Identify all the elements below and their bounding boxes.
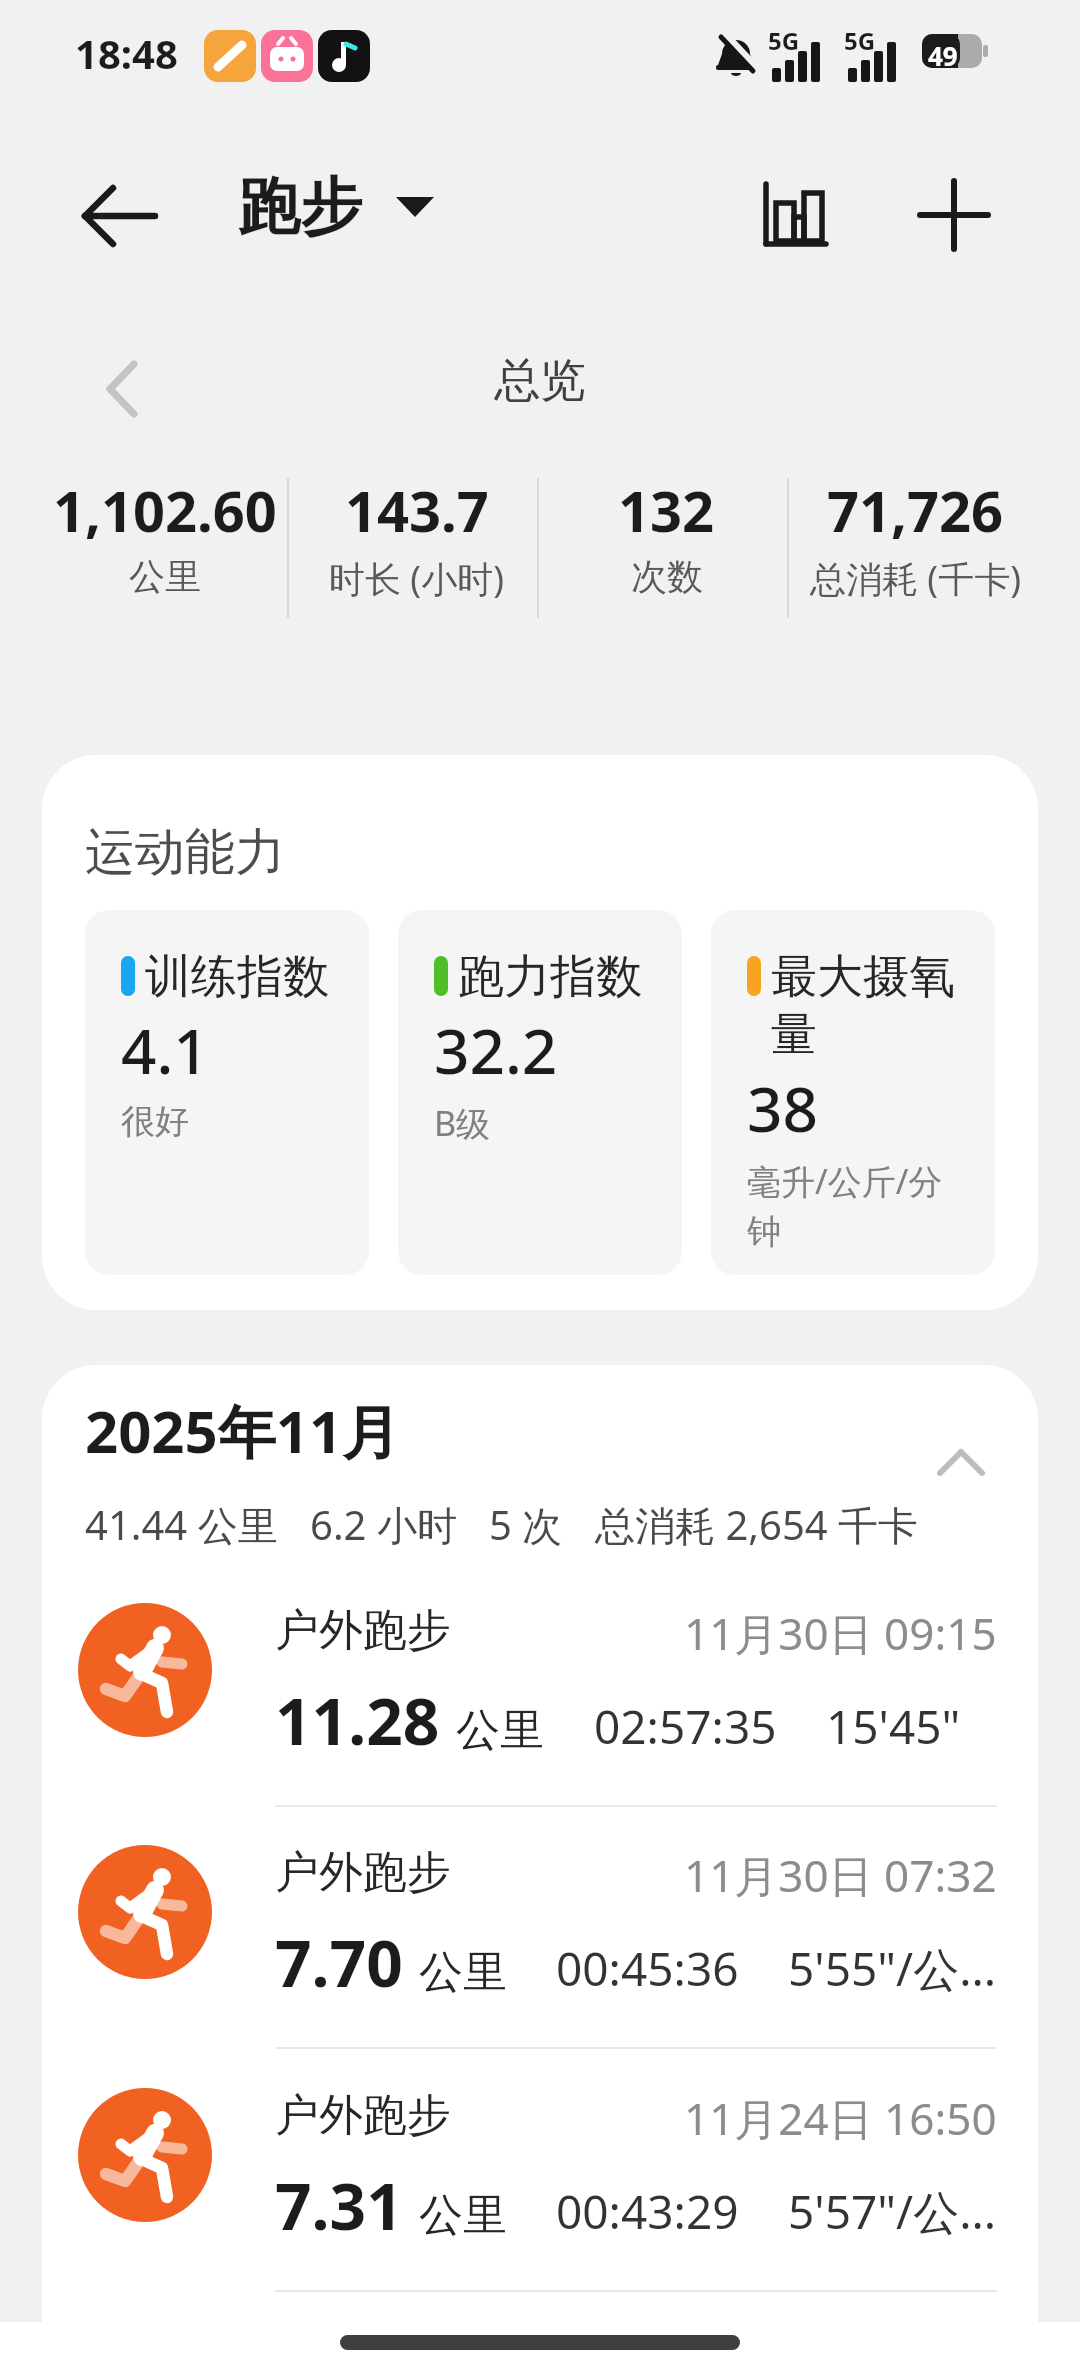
button[interactable]: 71,726 <box>790 472 1040 603</box>
staticText: 公里 <box>419 2188 507 2243</box>
staticText: 00:43:29 <box>556 2180 739 2243</box>
staticText: 很好 <box>121 1100 189 1143</box>
staticText: 7.70 <box>275 1919 403 2006</box>
staticText: 6.2 小时 <box>310 1497 457 1552</box>
staticText: 总消耗 2,654 千卡 <box>595 1497 919 1552</box>
staticText: 15'45" <box>826 1695 961 1758</box>
staticText: 11.28 <box>275 1677 440 1764</box>
button[interactable]: 132 <box>541 472 791 599</box>
staticText: 5 次 <box>489 1497 563 1552</box>
button[interactable] <box>912 1425 1012 1495</box>
staticText: 4.1 <box>121 1008 209 1092</box>
staticText: 11月30日 07:32 <box>684 1845 997 1905</box>
staticText: 户外跑步 <box>275 1603 451 1658</box>
button[interactable]: 户外跑步 <box>78 1603 1008 1803</box>
button[interactable] <box>900 162 1008 270</box>
button[interactable]: 最大摄氧量 <box>711 910 995 1275</box>
staticText: 最大摄氧量 <box>771 948 961 1064</box>
staticText: 2025年11月 <box>85 1391 401 1470</box>
staticText: 户外跑步 <box>275 1845 451 1900</box>
staticText: 次数 <box>631 554 703 599</box>
staticText: 1,102.60 <box>53 472 277 548</box>
staticText: 11月30日 09:15 <box>684 1603 997 1663</box>
staticText: 公里 <box>456 1703 544 1758</box>
button[interactable] <box>96 360 156 420</box>
button[interactable]: 跑步 <box>238 168 436 246</box>
staticText: 训练指数 <box>145 948 329 1006</box>
button[interactable] <box>740 162 848 270</box>
staticText: 公里 <box>419 1945 507 2000</box>
staticText: 71,726 <box>827 472 1004 548</box>
button[interactable] <box>340 2335 740 2350</box>
staticText: 41.44 公里 <box>85 1497 278 1552</box>
staticText: B级 <box>434 1100 491 1146</box>
button[interactable]: 1,102.60 <box>40 472 290 599</box>
staticText: 132 <box>618 472 715 548</box>
staticText: 毫升/公斤/分钟 <box>747 1158 953 1253</box>
staticText: 143.7 <box>345 472 489 548</box>
staticText: 18:48 <box>75 26 178 80</box>
button[interactable]: 户外跑步 <box>78 1845 1008 2045</box>
staticText: 跑步 <box>238 168 362 246</box>
button[interactable] <box>60 170 170 280</box>
staticText: 38 <box>747 1066 818 1150</box>
staticText: 运动能力 <box>85 821 285 884</box>
staticText: 11月24日 16:50 <box>684 2088 997 2148</box>
staticText: 5G <box>768 24 800 57</box>
staticText: 32.2 <box>434 1008 558 1092</box>
staticText: 00:45:36 <box>556 1937 739 2000</box>
staticText: 公里 <box>129 554 201 599</box>
staticText: 7.31 <box>275 2162 403 2249</box>
button[interactable]: 训练指数 <box>85 910 369 1275</box>
staticText: 5'55"/公... <box>788 1937 997 2000</box>
staticText: 5G <box>844 24 876 57</box>
staticText: 总览 <box>494 352 586 410</box>
button[interactable]: 户外跑步 <box>78 2088 1008 2288</box>
button[interactable]: 跑力指数 <box>398 910 682 1275</box>
staticText: 总消耗 (千卡) <box>810 554 1021 603</box>
staticText: 5'57"/公... <box>788 2180 997 2243</box>
staticText: 时长 (小时) <box>329 554 504 603</box>
staticText: 02:57:35 <box>594 1695 777 1758</box>
staticText: 户外跑步 <box>275 2088 451 2143</box>
staticText: 49 <box>928 38 958 73</box>
staticText: 跑力指数 <box>458 948 642 1006</box>
button[interactable]: 143.7 <box>291 472 541 603</box>
